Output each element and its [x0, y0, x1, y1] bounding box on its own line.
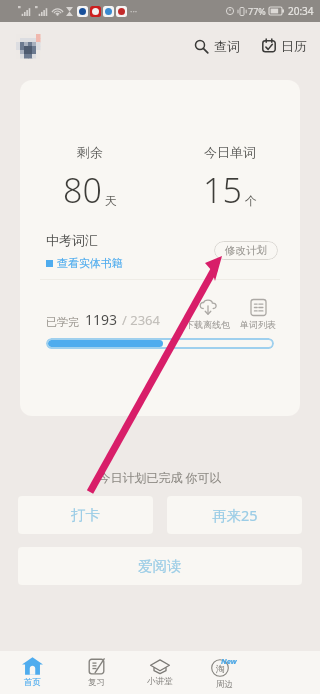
staticText: 查词	[214, 38, 240, 54]
staticText: 今日单词	[204, 144, 256, 160]
button[interactable]: 修改计划	[214, 241, 278, 260]
staticText: 20:34	[288, 4, 314, 18]
staticText: ···	[130, 5, 138, 17]
button[interactable]: 下载离线包	[183, 299, 232, 330]
button[interactable]: Profile	[16, 34, 40, 58]
staticText: 下载离线包	[185, 319, 230, 330]
staticText: 修改计划	[225, 244, 267, 257]
button[interactable]: 再来25	[167, 496, 302, 534]
button[interactable]: 小讲堂	[128, 651, 192, 694]
staticText: New	[221, 656, 237, 666]
staticText: 15	[203, 167, 242, 213]
staticText: 复习	[88, 677, 105, 688]
button[interactable]: 复习	[64, 651, 128, 694]
staticText: / 2364	[122, 311, 160, 329]
staticText: 80	[63, 167, 102, 213]
staticText: 日历	[281, 38, 307, 54]
button[interactable]: 查看实体书籍	[46, 256, 123, 270]
staticText: 周边	[216, 679, 233, 690]
staticText: 中考词汇	[46, 232, 98, 248]
button[interactable]: 首页	[0, 651, 64, 694]
staticText: 再来25	[212, 505, 258, 525]
staticText: 小讲堂	[147, 676, 173, 687]
button[interactable]: 单词列表	[238, 299, 278, 330]
staticText: 已学完	[46, 315, 79, 329]
staticText: 查看实体书籍	[57, 256, 123, 270]
button[interactable]: 打卡	[18, 496, 153, 534]
staticText: 个	[245, 193, 257, 208]
staticText: 天	[105, 193, 117, 208]
button[interactable]: 查词	[190, 34, 244, 58]
staticText: 单词列表	[240, 319, 276, 330]
button[interactable]: 日历	[258, 34, 311, 58]
staticText: 77%	[248, 5, 266, 17]
button[interactable]: 爱阅读	[18, 547, 302, 585]
staticText: 今日计划已完成 你可以	[0, 469, 320, 485]
staticText: 淘	[216, 663, 225, 674]
staticText: 首页	[24, 677, 41, 688]
staticText: 爱阅读	[138, 557, 182, 575]
staticText: 打卡	[71, 506, 100, 524]
button[interactable]: 淘	[192, 651, 256, 694]
staticText: 剩余	[77, 144, 103, 160]
staticText: 1193	[85, 310, 118, 329]
